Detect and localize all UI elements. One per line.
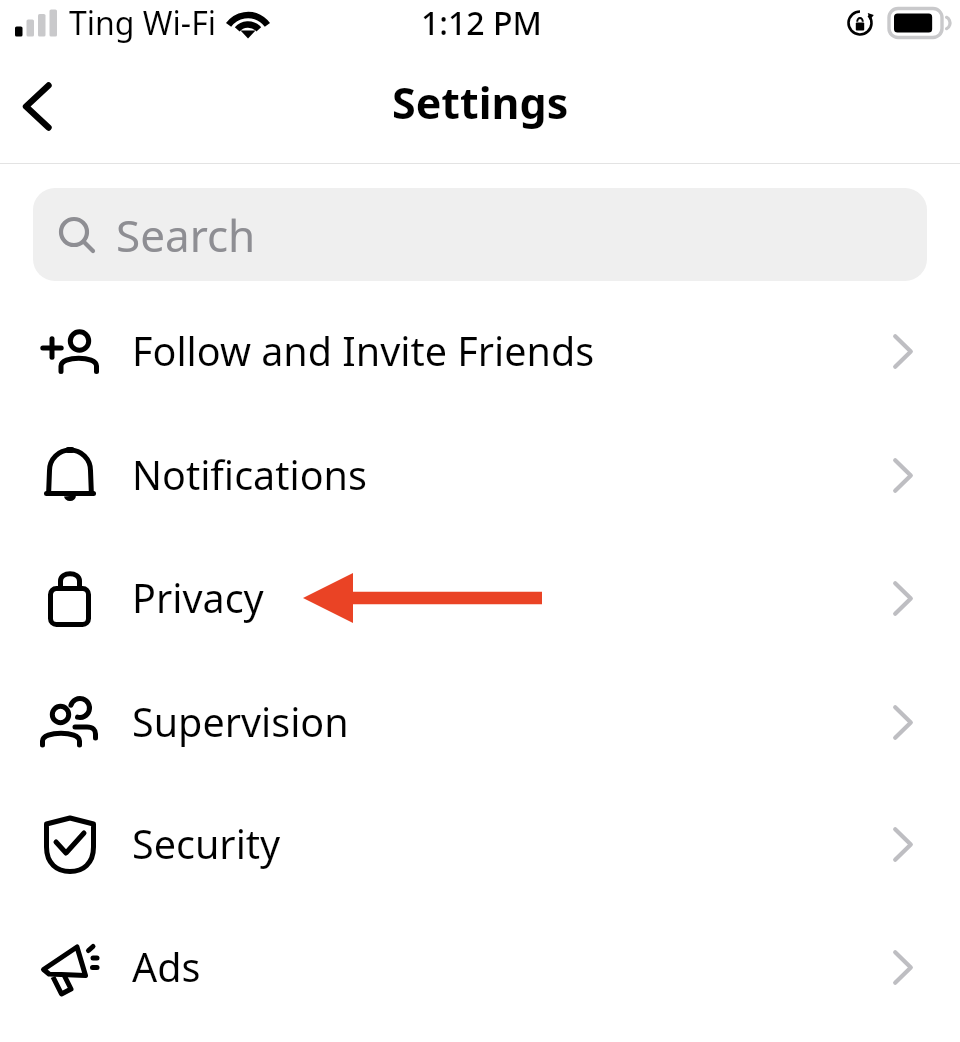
staticText: Ads: [132, 940, 201, 994]
button[interactable]: Privacy: [0, 536, 960, 660]
button[interactable]: Back: [0, 71, 74, 145]
staticText: 1:12 PM: [421, 1, 542, 45]
staticText: Follow and Invite Friends: [132, 324, 595, 378]
staticText: Security: [132, 817, 281, 871]
button[interactable]: Notifications: [0, 413, 960, 537]
button[interactable]: Ads: [0, 905, 960, 1029]
staticText: Ting Wi-Fi: [69, 1, 217, 45]
button[interactable]: Follow and Invite Friends: [0, 289, 960, 413]
button[interactable]: Search: [33, 188, 927, 281]
staticText: Supervision: [132, 695, 349, 749]
button[interactable]: Supervision: [0, 660, 960, 784]
staticText: Notifications: [132, 448, 367, 502]
button[interactable]: Security: [0, 782, 960, 906]
staticText: Settings: [392, 73, 569, 132]
staticText: Search: [116, 205, 256, 265]
staticText: Privacy: [132, 571, 264, 625]
